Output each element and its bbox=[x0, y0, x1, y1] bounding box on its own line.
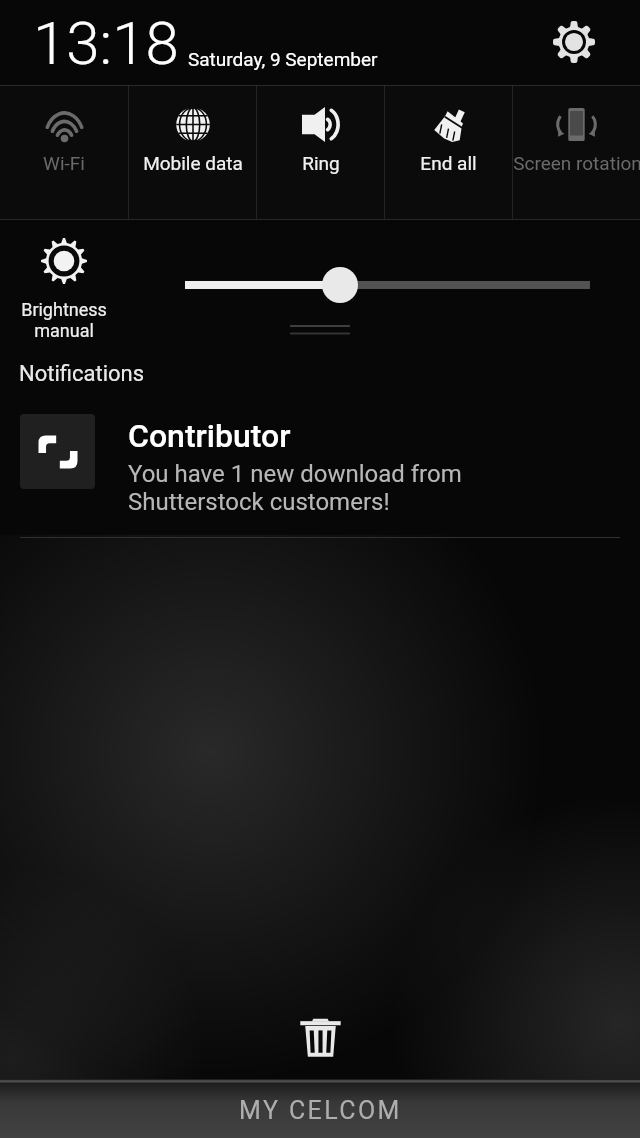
staticText: Screen rotation bbox=[513, 152, 640, 174]
staticText: Wi-Fi bbox=[43, 152, 85, 174]
staticText: Mobile data bbox=[143, 152, 243, 174]
staticText: Contributor bbox=[128, 417, 291, 455]
button[interactable]: Screen rotation bbox=[513, 86, 640, 219]
button[interactable]: Clear all notifications bbox=[290, 1007, 350, 1067]
button[interactable]: Mobile data bbox=[129, 86, 256, 219]
staticText: End all bbox=[420, 152, 477, 174]
button[interactable]: Wi-Fi bbox=[0, 86, 128, 219]
staticText: 13:18 bbox=[33, 8, 179, 78]
button[interactable]: MY CELCOM bbox=[0, 1079, 640, 1138]
staticText: MY CELCOM bbox=[239, 1096, 402, 1125]
button[interactable]: Contributor bbox=[20, 400, 620, 530]
button[interactable]: Brightness mode bbox=[41, 238, 87, 284]
staticText: You have 1 new download from Shutterstoc… bbox=[128, 460, 462, 516]
button[interactable]: Ring bbox=[257, 86, 384, 219]
staticText: Ring bbox=[302, 152, 340, 174]
staticText: Brightness manual bbox=[0, 299, 128, 342]
staticText: Saturday, 9 September bbox=[188, 48, 378, 70]
staticText: Notifications bbox=[19, 361, 145, 387]
button[interactable]: Settings bbox=[547, 15, 601, 69]
button[interactable]: End all bbox=[385, 86, 512, 219]
button[interactable]: Brightness slider bbox=[0, 264, 640, 304]
